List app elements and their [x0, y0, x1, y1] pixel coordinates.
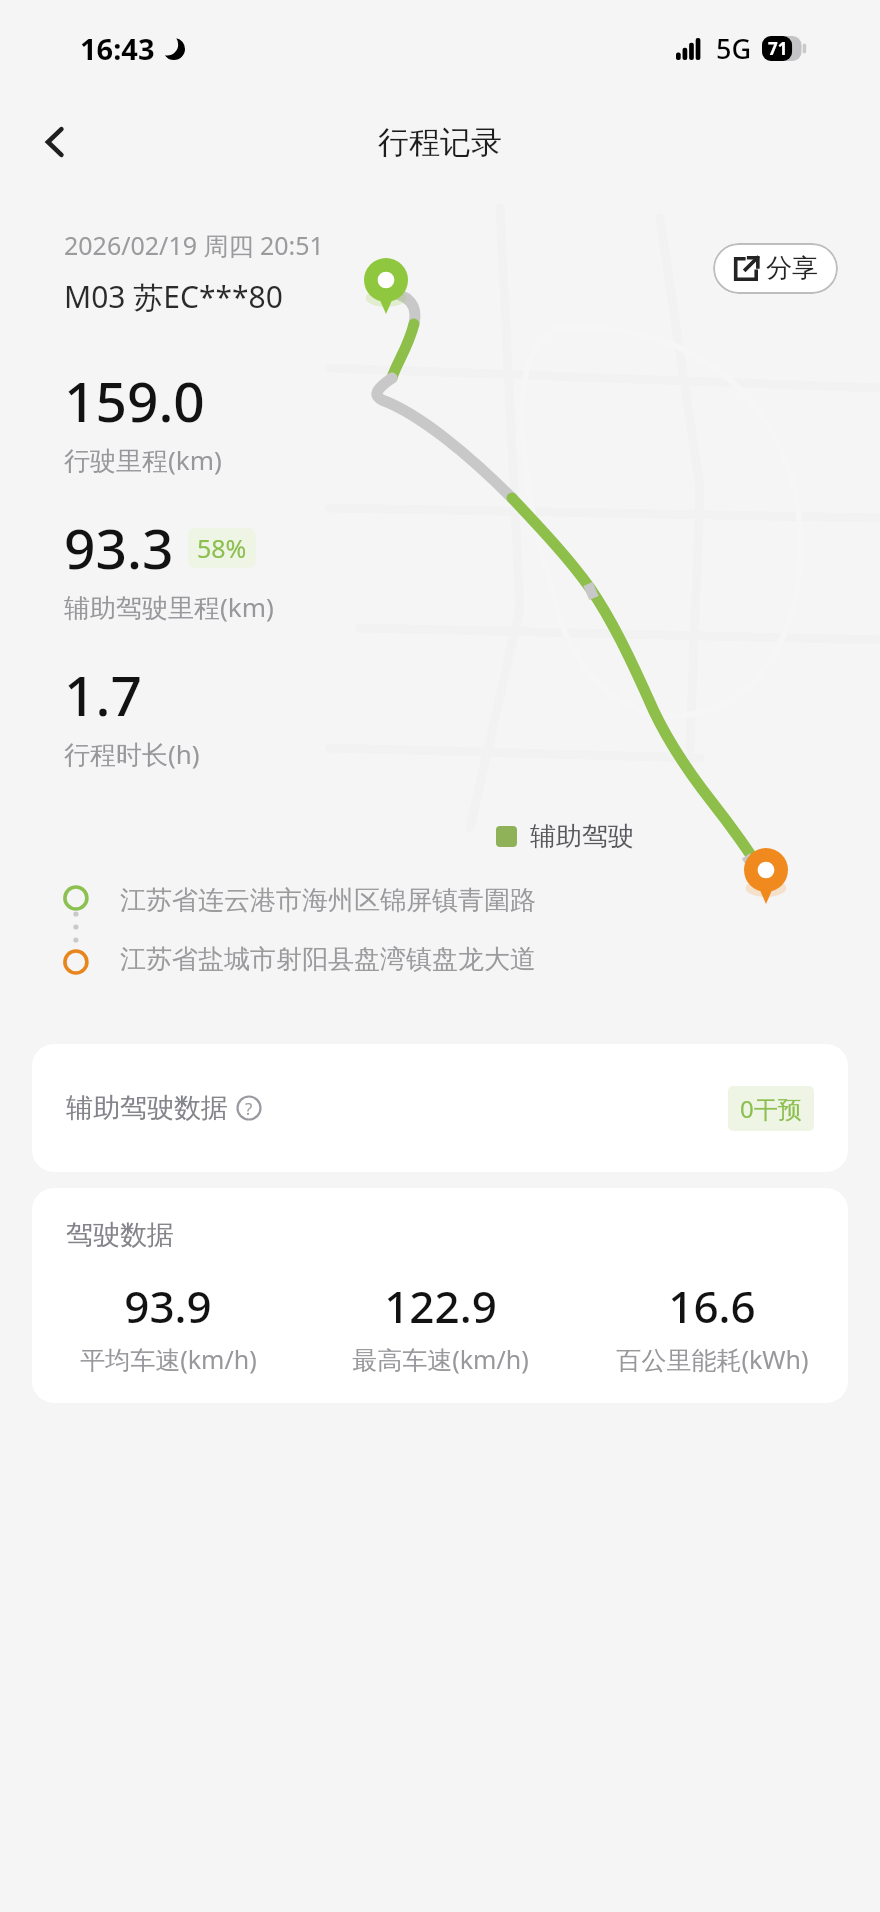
staticText: 2026/02/19 周四 20:51 — [64, 228, 324, 262]
staticText: 16.6 — [668, 1276, 756, 1336]
staticText: 江苏省连云港市海州区锦屏镇青圍路 — [120, 884, 536, 917]
staticText: 江苏省盐城市射阳县盘湾镇盘龙大道 — [120, 943, 536, 976]
staticText: 93.3 — [64, 510, 174, 585]
button[interactable]: 辅助驾驶数据 — [32, 1044, 848, 1172]
staticText: 58% — [197, 531, 247, 565]
staticText: 百公里能耗(kWh) — [616, 1342, 809, 1376]
staticText: 行程记录 — [378, 123, 502, 162]
staticText: 93.9 — [124, 1276, 212, 1336]
staticText: 71 — [768, 37, 788, 60]
staticText: 行程时长(h) — [64, 736, 200, 772]
staticText: 122.9 — [384, 1276, 497, 1336]
staticText: 分享 — [766, 252, 818, 285]
staticText: 行驶里程(km) — [64, 442, 222, 478]
button[interactable]: 帮助 — [236, 1095, 262, 1121]
staticText: M03 苏EC***80 — [64, 276, 283, 317]
staticText: 辅助驾驶数据 — [66, 1091, 228, 1125]
button[interactable]: 驾驶数据 — [32, 1188, 848, 1403]
staticText: 辅助驾驶 — [530, 820, 634, 853]
staticText: 最高车速(km/h) — [352, 1342, 529, 1376]
staticText: 1.7 — [64, 657, 142, 732]
staticText: 0干预 — [740, 1092, 802, 1125]
staticText: 平均车速(km/h) — [80, 1342, 257, 1376]
button[interactable]: 分享 — [713, 243, 838, 294]
staticText: 16:43 — [80, 29, 155, 68]
staticText: 5G — [716, 30, 752, 67]
button[interactable]: Back — [26, 113, 84, 171]
staticText: 驾驶数据 — [66, 1218, 174, 1252]
staticText: 159.0 — [64, 363, 205, 438]
staticText: ? — [245, 1097, 253, 1120]
staticText: 辅助驾驶里程(km) — [64, 589, 274, 625]
